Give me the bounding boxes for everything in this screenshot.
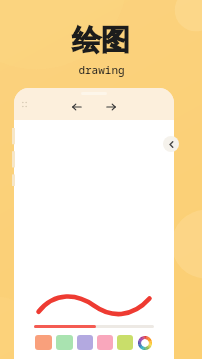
staticText: drawing <box>78 62 125 77</box>
button[interactable]: Color swatch <box>56 335 73 350</box>
button[interactable]: Brush size <box>34 320 154 332</box>
button[interactable]: Color swatch <box>77 335 93 350</box>
button[interactable]: Color swatch <box>35 335 52 350</box>
button[interactable]: Undo <box>70 100 84 114</box>
button[interactable] <box>14 120 174 359</box>
button[interactable]: Back <box>163 136 179 152</box>
button[interactable]: Color swatch <box>117 335 133 350</box>
button[interactable]: Color swatch <box>97 335 113 350</box>
button[interactable]: Menu <box>20 100 29 109</box>
button[interactable]: Custom color <box>137 335 153 350</box>
staticText: 绘图 <box>72 22 130 59</box>
button[interactable]: Redo <box>104 100 118 114</box>
